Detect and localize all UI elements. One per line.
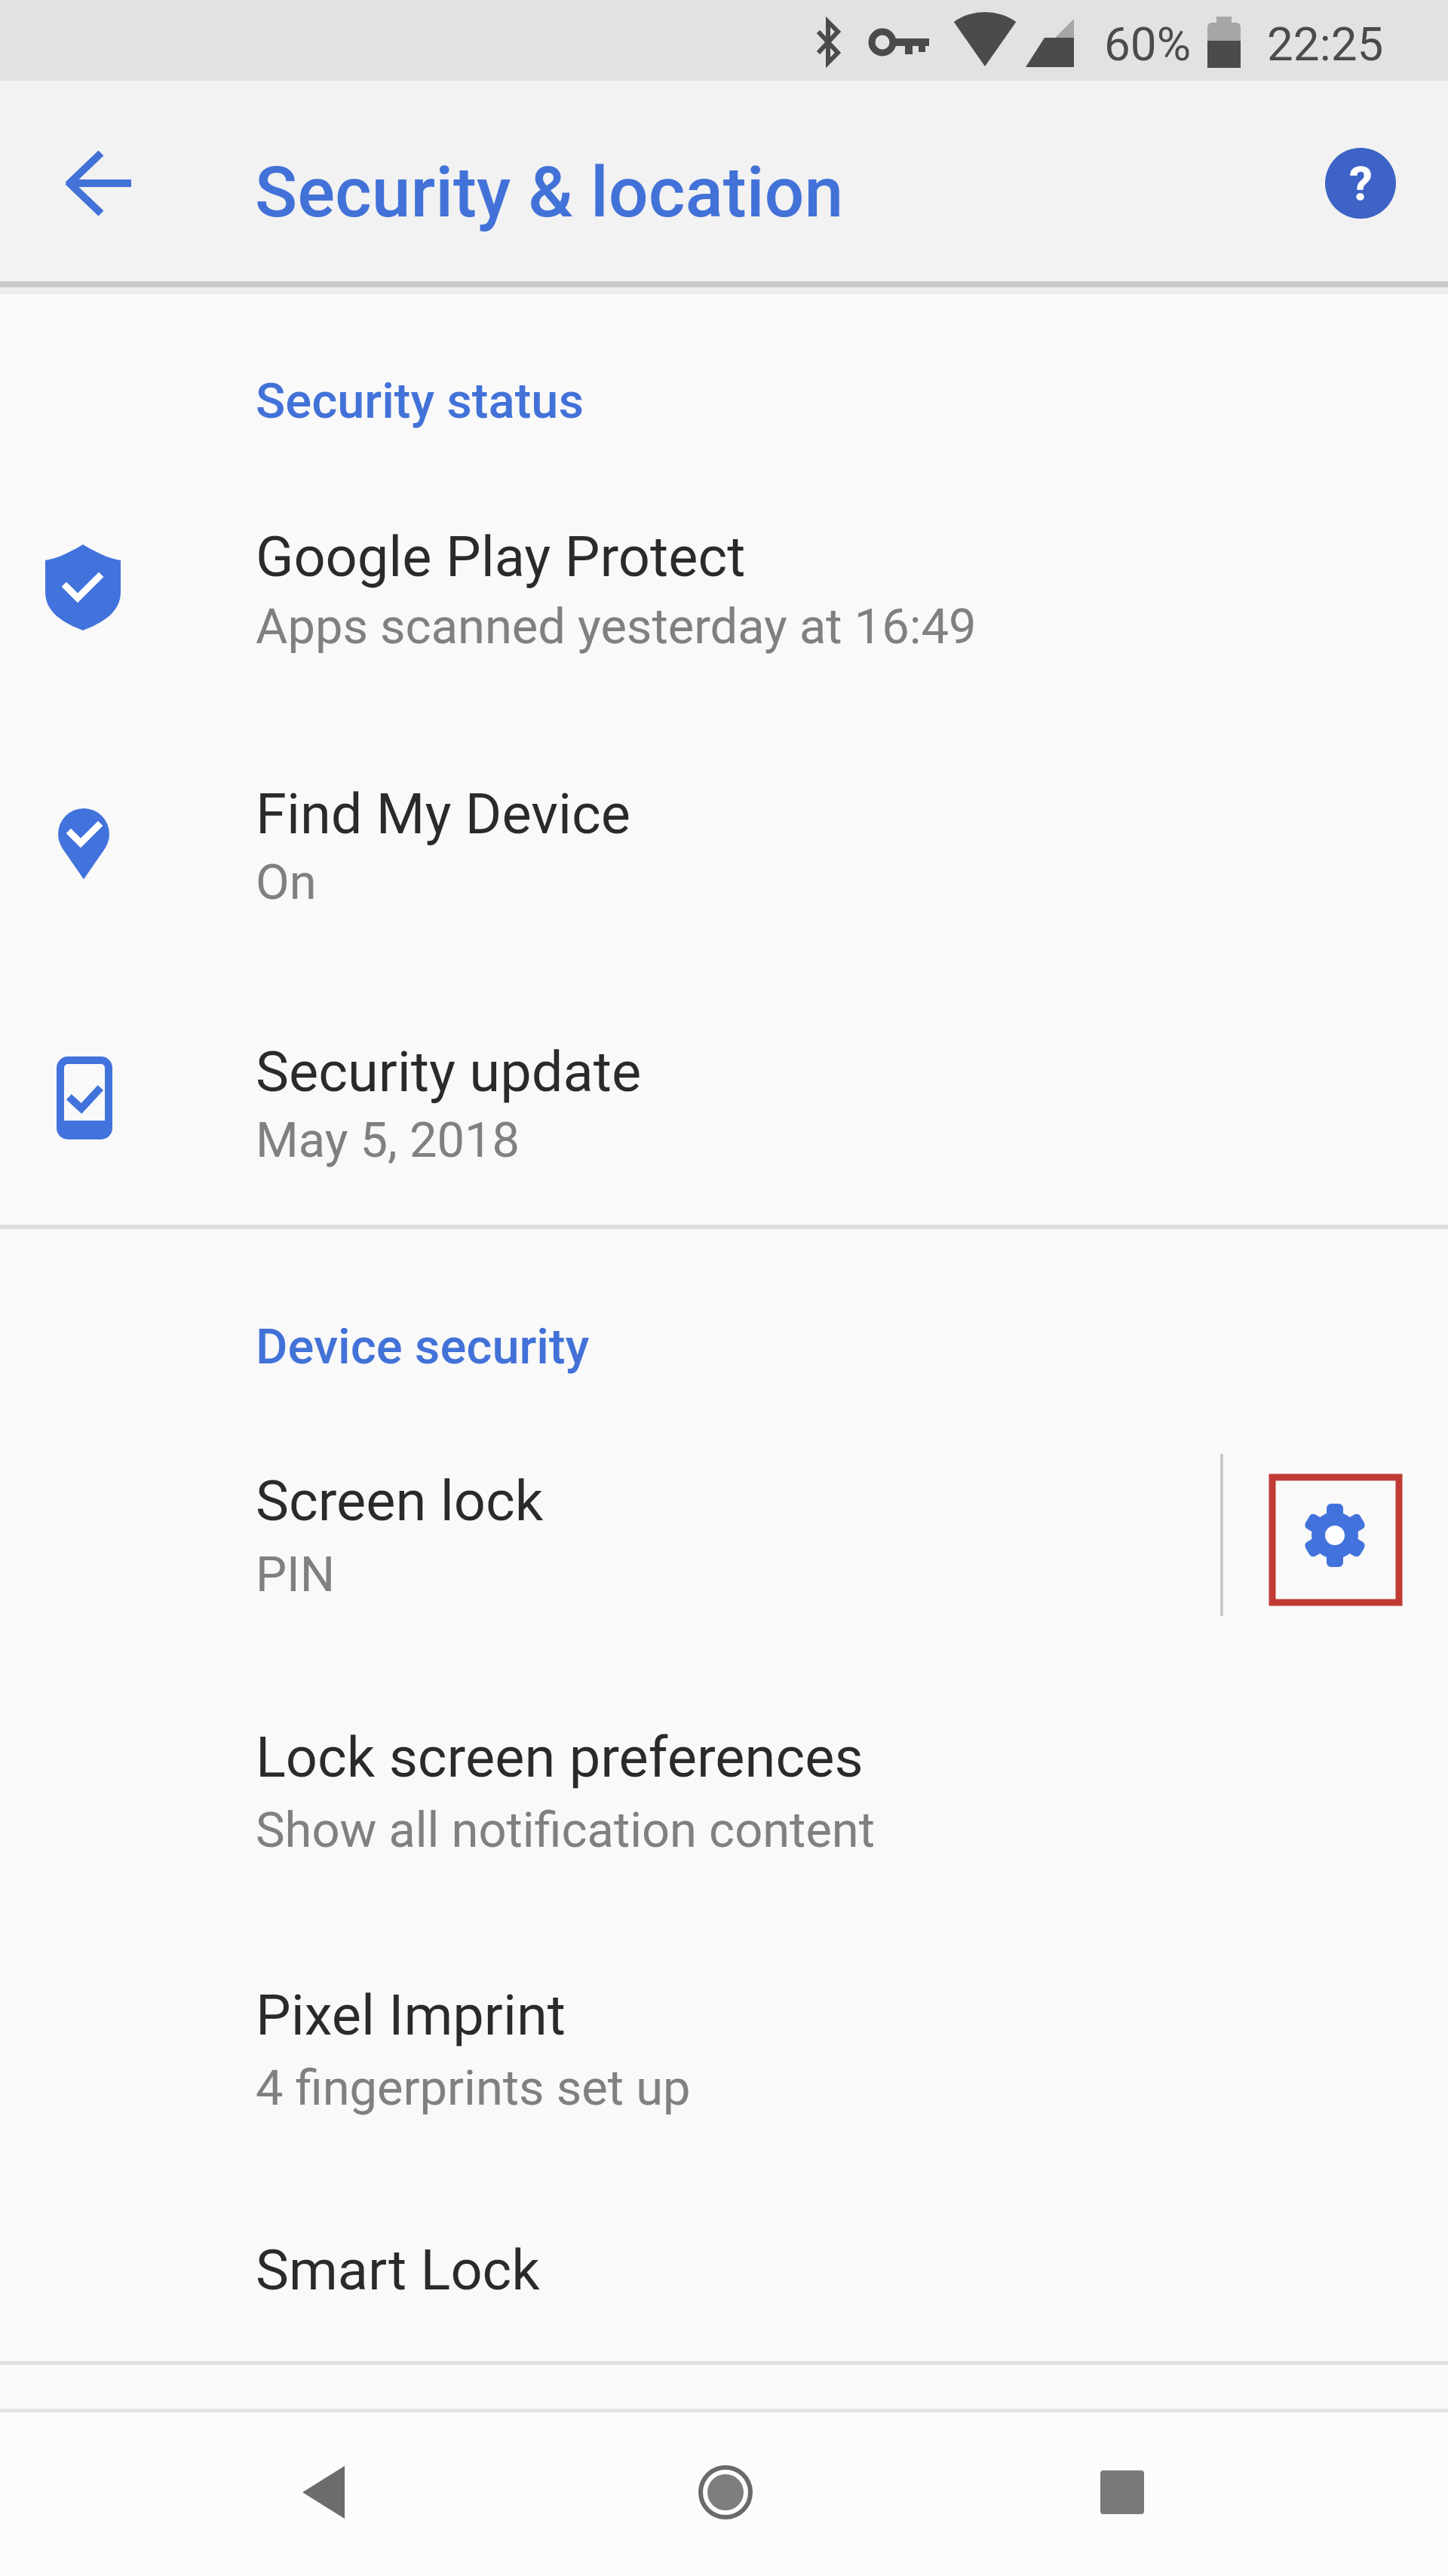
staticText: Find My Device: [256, 781, 630, 847]
button[interactable]: [0, 2187, 1448, 2361]
staticText: Pixel Imprint: [256, 1983, 566, 2048]
button[interactable]: [0, 471, 1448, 728]
staticText: 60%: [1104, 17, 1192, 72]
staticText: Show all notification content: [256, 1802, 876, 1859]
staticText: Security status: [256, 373, 584, 430]
staticText: 4 fingerprints set up: [256, 2059, 691, 2117]
button[interactable]: [53, 136, 147, 230]
staticText: Google Play Protect: [256, 524, 746, 590]
button[interactable]: [0, 1930, 1448, 2187]
button[interactable]: [0, 986, 1448, 1243]
staticText: Smart Lock: [256, 2237, 540, 2303]
staticText: Security update: [256, 1039, 642, 1105]
staticText: Security & location: [255, 152, 844, 234]
staticText: Apps scanned yesterday at 16:49: [256, 598, 977, 655]
staticText: PIN: [256, 1546, 336, 1603]
staticText: 22:25: [1267, 17, 1384, 72]
staticText: Lock screen preferences: [256, 1725, 864, 1790]
button[interactable]: [283, 2451, 366, 2534]
staticText: May 5, 2018: [256, 1112, 520, 1169]
staticText: Screen lock: [256, 1468, 544, 1534]
staticText: ?: [1349, 156, 1373, 211]
staticText: On: [256, 854, 317, 911]
button[interactable]: [0, 1415, 1448, 1673]
button[interactable]: [1269, 1474, 1402, 1607]
button[interactable]: [684, 2451, 767, 2534]
button[interactable]: [0, 1673, 1448, 1930]
button[interactable]: [0, 728, 1448, 986]
button[interactable]: [1081, 2451, 1164, 2534]
staticText: Device security: [256, 1318, 590, 1375]
button[interactable]: ?: [1325, 148, 1396, 219]
